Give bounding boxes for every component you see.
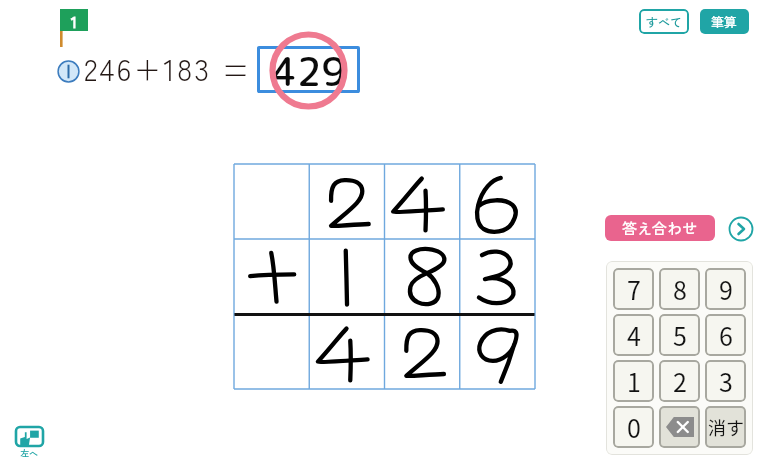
staticText: 6 — [719, 317, 733, 353]
button[interactable]: 筆算 — [700, 9, 749, 34]
staticText: 2 — [673, 363, 687, 399]
button[interactable]: 6 — [705, 314, 746, 356]
staticText: 4 — [627, 317, 641, 353]
button[interactable]: すべて — [639, 9, 689, 34]
button[interactable]: 5 — [659, 314, 700, 356]
button[interactable]: 消す — [705, 406, 746, 448]
button[interactable]: 次へ — [729, 217, 753, 241]
button[interactable]: 3 — [705, 360, 746, 402]
button[interactable]: 429 — [257, 46, 360, 93]
staticText: 1 — [60, 11, 88, 33]
button[interactable]: 7 — [613, 268, 654, 310]
button[interactable]: 0 — [613, 406, 654, 448]
button[interactable]: 左へ — [14, 426, 45, 460]
button[interactable]: 1 — [613, 360, 654, 402]
button[interactable]: 2 — [659, 360, 700, 402]
staticText: 246+183 = — [84, 46, 252, 89]
staticText: 7 — [627, 271, 641, 307]
staticText: 9 — [719, 271, 733, 307]
button[interactable]: 削除 — [659, 406, 700, 448]
staticText: 5 — [673, 317, 687, 353]
staticText: 筆算 — [711, 12, 738, 31]
staticText: 1 — [627, 363, 641, 399]
button[interactable]: 9 — [705, 268, 746, 310]
button[interactable]: 4 — [613, 314, 654, 356]
staticText: 答え合わせ — [622, 217, 698, 239]
staticText: 左へ — [20, 447, 39, 460]
staticText: 429 — [272, 44, 347, 91]
button[interactable]: 答え合わせ — [605, 215, 715, 241]
staticText: 8 — [673, 271, 687, 307]
staticText: 0 — [627, 409, 641, 445]
staticText: 消す — [708, 414, 744, 440]
staticText: 3 — [719, 363, 733, 399]
staticText: すべて — [646, 13, 683, 30]
button[interactable]: 8 — [659, 268, 700, 310]
